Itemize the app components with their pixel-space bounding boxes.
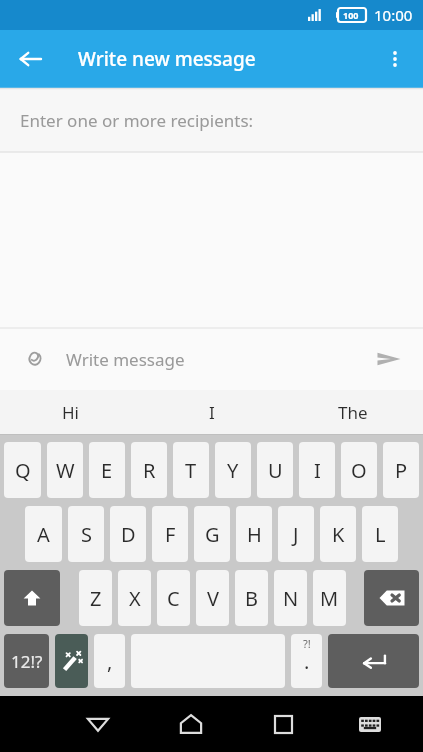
button[interactable]: Back bbox=[51, 696, 144, 752]
staticText: Write new message bbox=[78, 46, 256, 72]
button[interactable]: ?! bbox=[291, 634, 322, 688]
staticText: H bbox=[247, 521, 262, 548]
staticText: C bbox=[167, 585, 180, 612]
button[interactable]: J bbox=[278, 506, 314, 562]
button[interactable]: S bbox=[68, 506, 104, 562]
button[interactable]: Q bbox=[4, 442, 41, 498]
staticText: Enter one or more recipients: bbox=[20, 109, 254, 132]
button[interactable]: O bbox=[341, 442, 377, 498]
staticText: P bbox=[395, 457, 408, 484]
staticText: M bbox=[320, 585, 339, 612]
staticText: G bbox=[205, 521, 220, 548]
staticText: F bbox=[165, 521, 176, 548]
button[interactable]: Enter one or more recipients: bbox=[0, 88, 423, 152]
button[interactable]: Attach bbox=[12, 337, 56, 381]
staticText: J bbox=[293, 521, 299, 548]
staticText: . bbox=[304, 648, 310, 675]
button[interactable]: Enter bbox=[328, 634, 419, 688]
staticText: B bbox=[245, 585, 258, 612]
staticText: 100 bbox=[343, 9, 359, 21]
button[interactable]: Write message bbox=[66, 328, 367, 390]
button[interactable]: H bbox=[236, 506, 272, 562]
staticText: O bbox=[351, 457, 367, 484]
button[interactable]: Keyboard bbox=[330, 696, 409, 752]
staticText: T bbox=[185, 457, 197, 484]
button[interactable]: I bbox=[299, 442, 335, 498]
button[interactable]: C bbox=[157, 570, 190, 626]
staticText: D bbox=[121, 521, 136, 548]
staticText: V bbox=[207, 585, 219, 612]
button[interactable]: I bbox=[141, 390, 282, 434]
button[interactable]: Send bbox=[367, 337, 411, 381]
button[interactable]: F bbox=[152, 506, 188, 562]
staticText: Z bbox=[90, 585, 102, 612]
staticText: , bbox=[107, 648, 113, 675]
button[interactable]: The bbox=[282, 390, 423, 434]
button[interactable]: B bbox=[235, 570, 268, 626]
staticText: The bbox=[338, 401, 368, 424]
button[interactable]: N bbox=[274, 570, 307, 626]
button[interactable]: Home bbox=[144, 696, 237, 752]
staticText: N bbox=[283, 585, 299, 612]
staticText: 10:00 bbox=[374, 5, 413, 25]
button[interactable]: Backspace bbox=[364, 570, 419, 626]
staticText: Write message bbox=[66, 348, 185, 371]
button[interactable]: Z bbox=[79, 570, 112, 626]
button[interactable]: Hi bbox=[0, 390, 141, 434]
button[interactable]: Y bbox=[215, 442, 251, 498]
button[interactable]: L bbox=[362, 506, 398, 562]
button[interactable]: A bbox=[25, 506, 62, 562]
button[interactable]: G bbox=[194, 506, 230, 562]
button[interactable]: V bbox=[196, 570, 229, 626]
staticText: I bbox=[314, 457, 321, 484]
button[interactable]: Recent apps bbox=[237, 696, 330, 752]
button[interactable]: T bbox=[173, 442, 209, 498]
button[interactable]: P bbox=[383, 442, 419, 498]
button[interactable]: Smart tools bbox=[55, 634, 88, 688]
staticText: U bbox=[268, 457, 283, 484]
button[interactable]: More options bbox=[373, 37, 417, 81]
staticText: ?! bbox=[303, 636, 311, 651]
button[interactable]: , bbox=[94, 634, 125, 688]
staticText: L bbox=[375, 521, 386, 548]
button[interactable]: U bbox=[257, 442, 293, 498]
staticText: 12!? bbox=[11, 650, 43, 673]
staticText: Hi bbox=[62, 401, 79, 424]
staticText: A bbox=[37, 521, 50, 548]
button[interactable]: D bbox=[110, 506, 146, 562]
button[interactable]: X bbox=[118, 570, 151, 626]
staticText: Q bbox=[15, 457, 31, 484]
staticText: K bbox=[332, 521, 345, 548]
button[interactable]: M bbox=[313, 570, 346, 626]
staticText: R bbox=[143, 457, 156, 484]
staticText: E bbox=[101, 457, 113, 484]
button[interactable]: W bbox=[47, 442, 83, 498]
staticText: S bbox=[81, 521, 92, 548]
button[interactable]: E bbox=[89, 442, 125, 498]
button[interactable]: R bbox=[131, 442, 167, 498]
button[interactable]: Shift bbox=[4, 570, 60, 626]
staticText: I bbox=[209, 401, 215, 424]
button[interactable]: K bbox=[320, 506, 356, 562]
staticText: X bbox=[129, 585, 141, 612]
staticText: W bbox=[56, 457, 75, 484]
button[interactable]: Back bbox=[8, 37, 52, 81]
button[interactable]: 12!? bbox=[4, 634, 49, 688]
staticText: Y bbox=[227, 457, 239, 484]
